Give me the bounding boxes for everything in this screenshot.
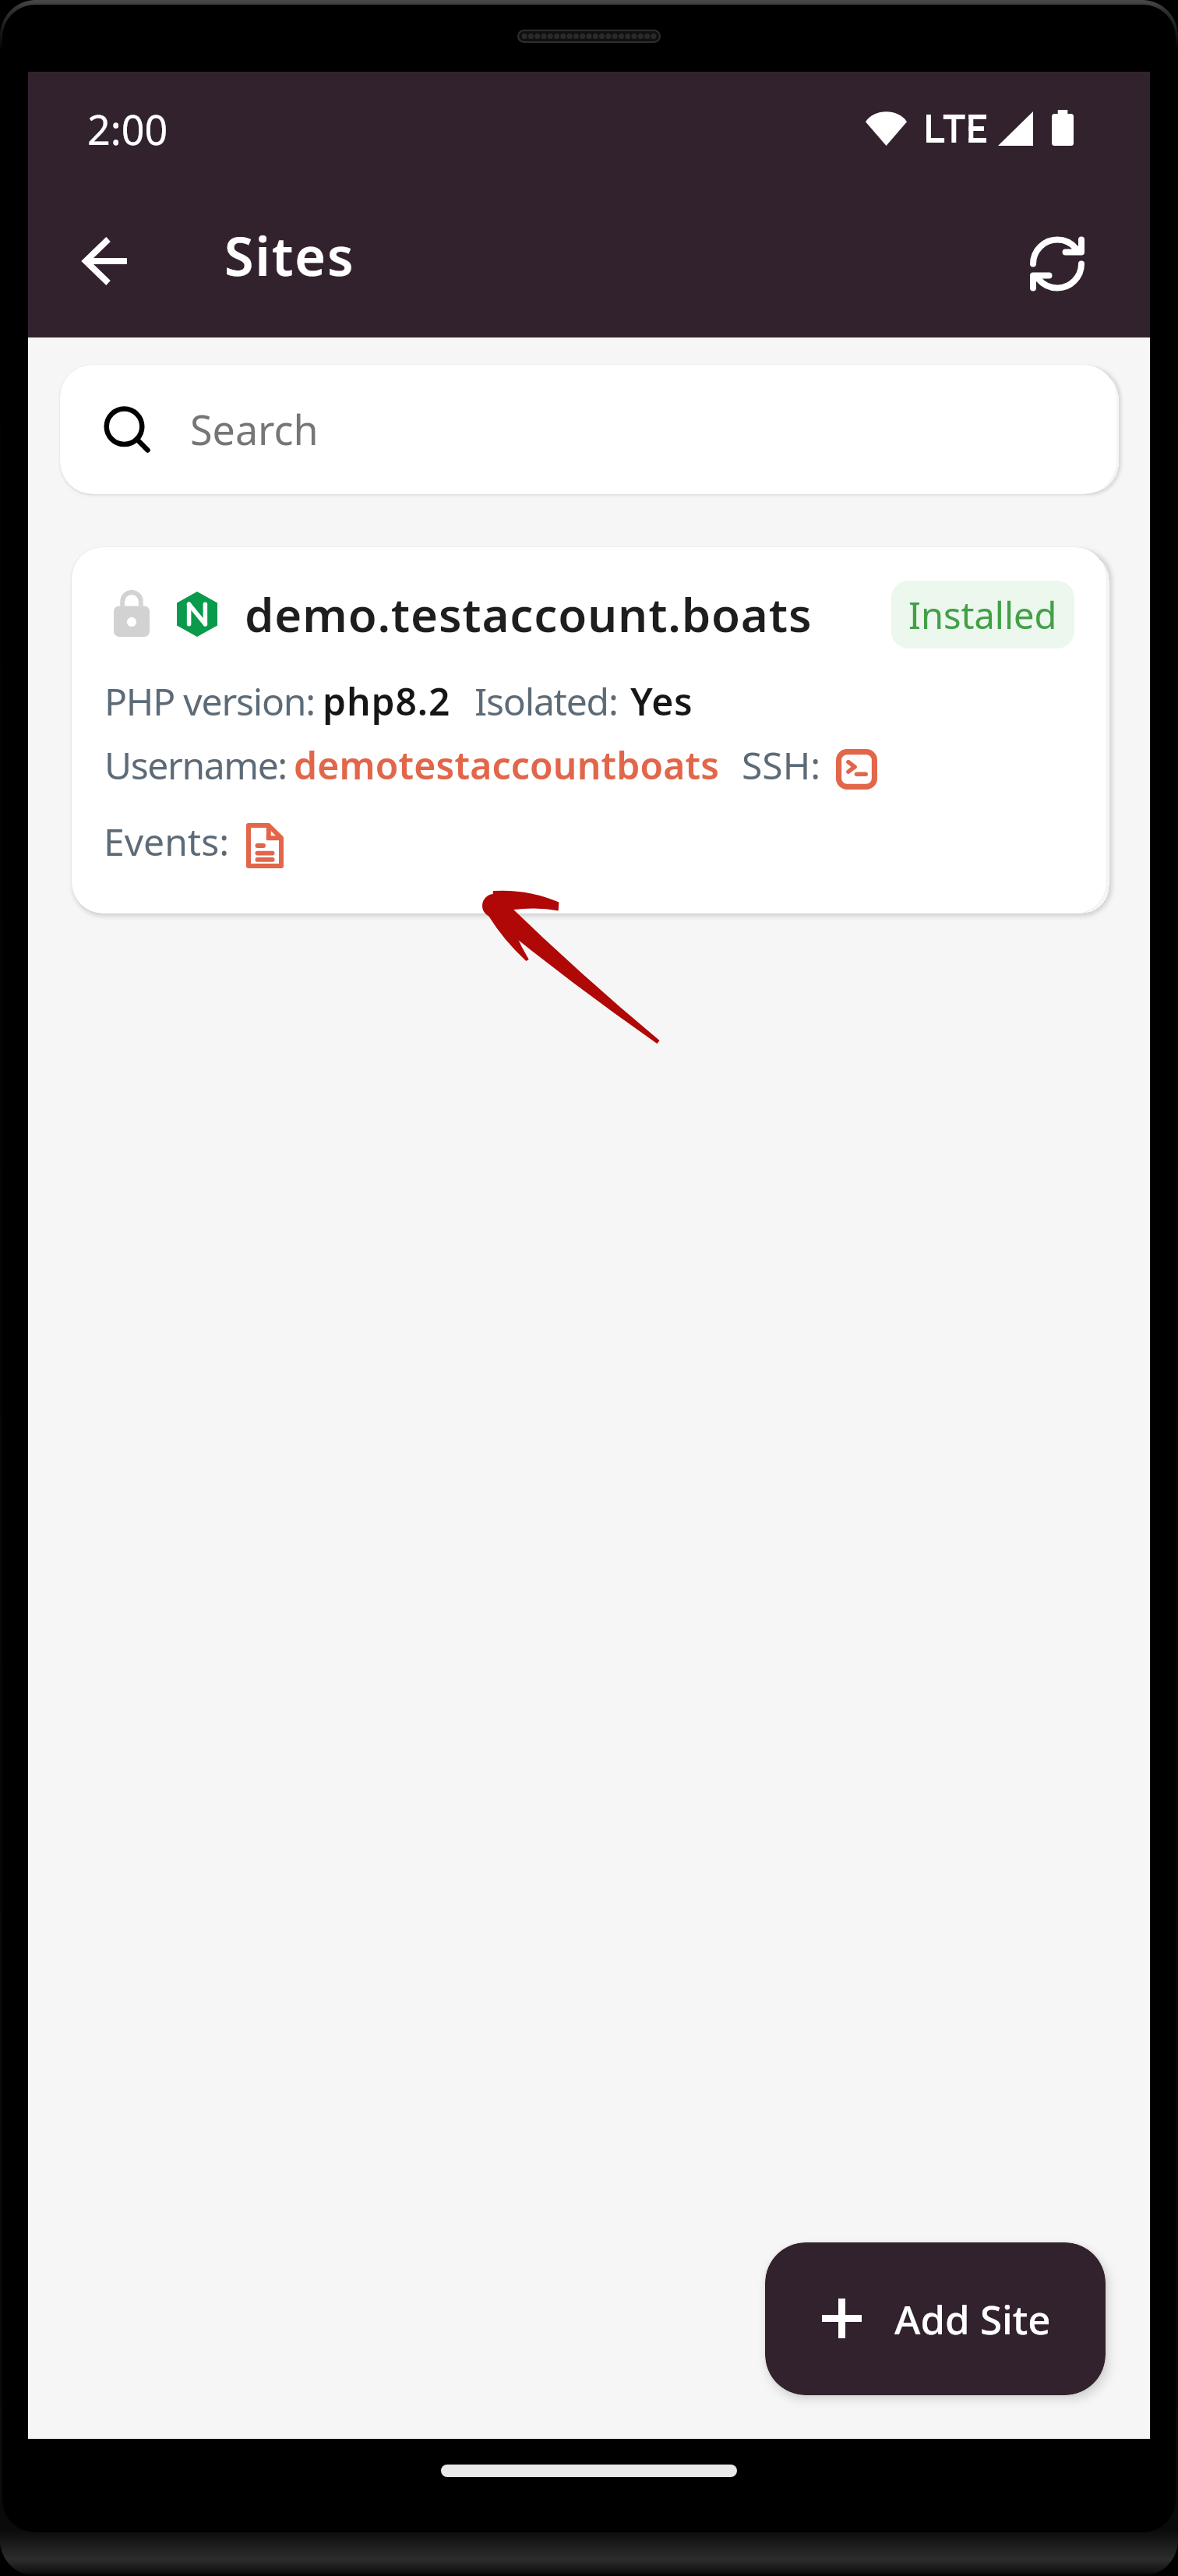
staticText: SSH: bbox=[742, 740, 821, 790]
button[interactable] bbox=[765, 2242, 1106, 2395]
staticText: Yes bbox=[630, 676, 693, 726]
button[interactable] bbox=[72, 547, 1106, 913]
button[interactable]: Installed bbox=[891, 581, 1074, 648]
button[interactable]: Open SSH terminal bbox=[836, 749, 877, 790]
button[interactable]: Refresh bbox=[1018, 224, 1096, 302]
staticText: PHP version: bbox=[104, 676, 315, 726]
staticText: php8.2 bbox=[323, 676, 451, 726]
button[interactable] bbox=[60, 365, 1116, 494]
staticText: Sites bbox=[224, 219, 355, 292]
staticText: Installed bbox=[908, 590, 1057, 640]
staticText: Isolated: bbox=[474, 676, 618, 726]
staticText: demo.testaccount.boats bbox=[245, 582, 813, 646]
staticText: demotestaccountboats bbox=[294, 740, 720, 790]
staticText: 2:00 bbox=[87, 101, 168, 157]
button[interactable]: Back bbox=[67, 226, 142, 296]
staticText: Add Site bbox=[894, 2292, 1051, 2345]
button[interactable]: View events bbox=[246, 823, 284, 868]
staticText: Events: bbox=[104, 816, 229, 867]
staticText: Search bbox=[190, 401, 319, 457]
staticText: Username: bbox=[104, 740, 287, 790]
